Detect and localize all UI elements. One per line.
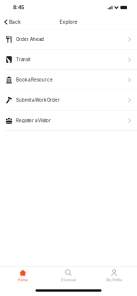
- staticText: Submit a Work Order: [16, 98, 60, 103]
- staticText: Back: [9, 19, 21, 25]
- button[interactable]: Back: [0, 16, 26, 28]
- staticText: Home: [18, 278, 28, 282]
- staticText: 8:45: [13, 4, 24, 10]
- staticText: Transit: [16, 57, 30, 62]
- button[interactable]: Transit: [0, 50, 137, 70]
- staticText: Order Ahead: [16, 37, 44, 42]
- button[interactable]: Book a Resource: [0, 70, 137, 90]
- button[interactable]: My Profile: [91, 267, 137, 285]
- staticText: Explore: [59, 19, 77, 25]
- staticText: Discover: [61, 278, 76, 282]
- button[interactable]: Order Ahead: [0, 29, 137, 50]
- staticText: Book a Resource: [16, 77, 53, 83]
- staticText: My Profile: [106, 278, 122, 282]
- button[interactable]: Home: [0, 267, 46, 285]
- button[interactable]: Register a Visitor: [0, 111, 137, 131]
- button[interactable]: Submit a Work Order: [0, 90, 137, 111]
- button[interactable]: Discover: [46, 267, 91, 285]
- staticText: Register a Visitor: [16, 118, 51, 123]
